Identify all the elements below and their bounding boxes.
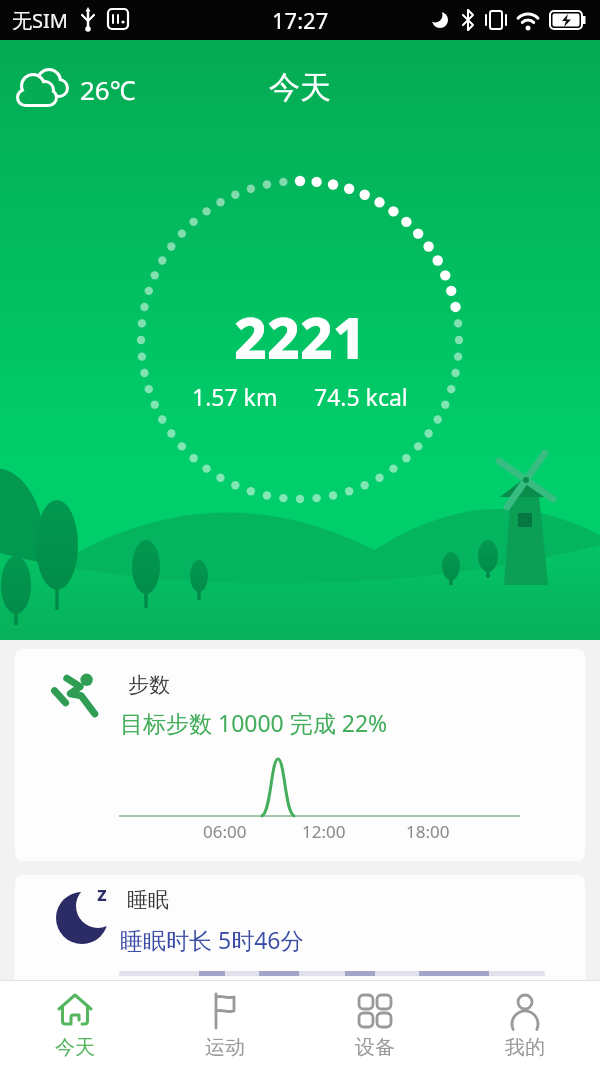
staticText: 06:00 [203,820,247,843]
staticText: 无SIM [12,7,68,34]
staticText: 步数 [128,672,170,698]
staticText: 18:00 [406,820,450,843]
staticText: 今天 [269,68,331,107]
button[interactable]: 今天 [0,981,150,1067]
staticText: 17:27 [272,5,329,35]
button[interactable]: 我的 [450,981,600,1067]
button[interactable]: 步数 [15,649,585,861]
staticText: 2221 [234,298,366,376]
staticText: 12:00 [302,820,346,843]
staticText: 我的 [505,1035,545,1060]
staticText: 1.57 km [192,381,278,412]
staticText: 目标步数 10000 完成 22% [120,707,388,738]
staticText: 26℃ [80,72,136,107]
staticText: 今天 [55,1035,95,1060]
button[interactable]: 设备 [300,981,450,1067]
button[interactable]: z [15,875,585,980]
staticText: 设备 [355,1035,395,1060]
staticText: 睡眠时长 5时46分 [120,924,304,955]
staticText: z [97,880,107,907]
staticText: 74.5 kcal [314,381,408,412]
staticText: 运动 [205,1035,245,1060]
button[interactable]: 运动 [150,981,300,1067]
staticText: 睡眠 [127,887,169,913]
